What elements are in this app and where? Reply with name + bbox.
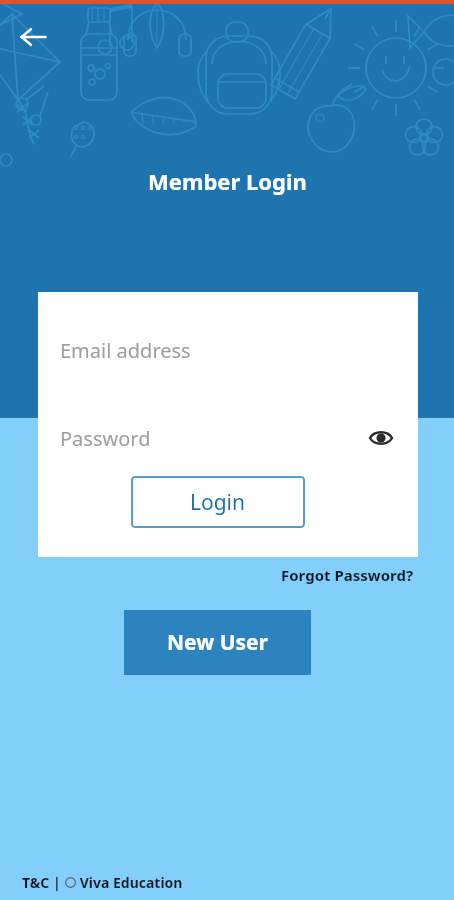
staticText: Password — [60, 425, 364, 452]
staticText: Member Login — [148, 166, 307, 196]
staticText: T&C | — [22, 873, 65, 892]
button[interactable]: Back — [10, 14, 56, 60]
button[interactable]: Show password — [364, 421, 398, 455]
button[interactable]: Password — [38, 410, 418, 466]
staticText: Email address — [60, 337, 191, 364]
staticText: Viva Education — [76, 873, 183, 892]
staticText: Forgot Password? — [281, 565, 414, 585]
staticText: New User — [167, 628, 268, 657]
button[interactable]: Forgot Password? — [277, 561, 418, 589]
button[interactable]: T&C | — [22, 873, 183, 892]
button[interactable]: Login — [131, 476, 305, 528]
button[interactable]: Email address — [38, 320, 418, 380]
button[interactable]: New User — [124, 610, 311, 675]
staticText: Login — [190, 488, 246, 517]
